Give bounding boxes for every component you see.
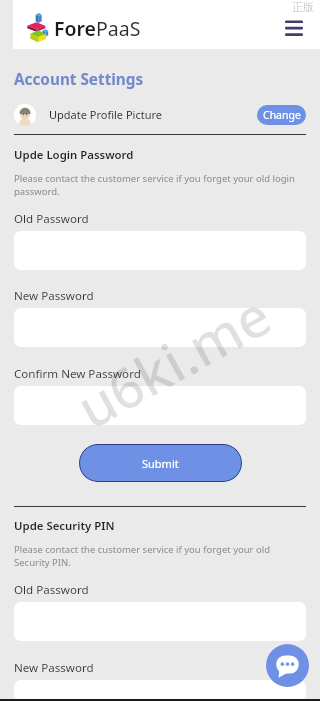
staticText: Submit [142, 456, 179, 471]
staticText: Account Settings [14, 69, 144, 90]
button[interactable]: Change [257, 105, 306, 125]
staticText: New Password [14, 288, 94, 304]
staticText: Change [263, 108, 301, 122]
staticText: New Password [14, 660, 94, 676]
button[interactable] [14, 386, 306, 425]
staticText: Old Password [14, 211, 89, 227]
staticText: ForePaaS [54, 15, 141, 42]
staticText: u6ki.me [63, 277, 284, 444]
staticText: Confirm New Password [14, 366, 141, 382]
staticText: Please contact the customer service if y… [14, 543, 306, 569]
staticText: Upde Login Password [14, 147, 134, 163]
button[interactable] [14, 680, 306, 701]
staticText: Update Profile Picture [49, 107, 163, 122]
staticText: Please contact the customer service if y… [14, 172, 306, 198]
button[interactable]: Chat [264, 642, 310, 688]
button[interactable] [14, 308, 306, 347]
button[interactable]: Submit [79, 444, 242, 482]
staticText: Old Password [14, 582, 89, 598]
button[interactable]: Menu [274, 5, 314, 45]
staticText: 正版 [292, 0, 314, 14]
staticText: Upde Security PIN [14, 518, 115, 534]
